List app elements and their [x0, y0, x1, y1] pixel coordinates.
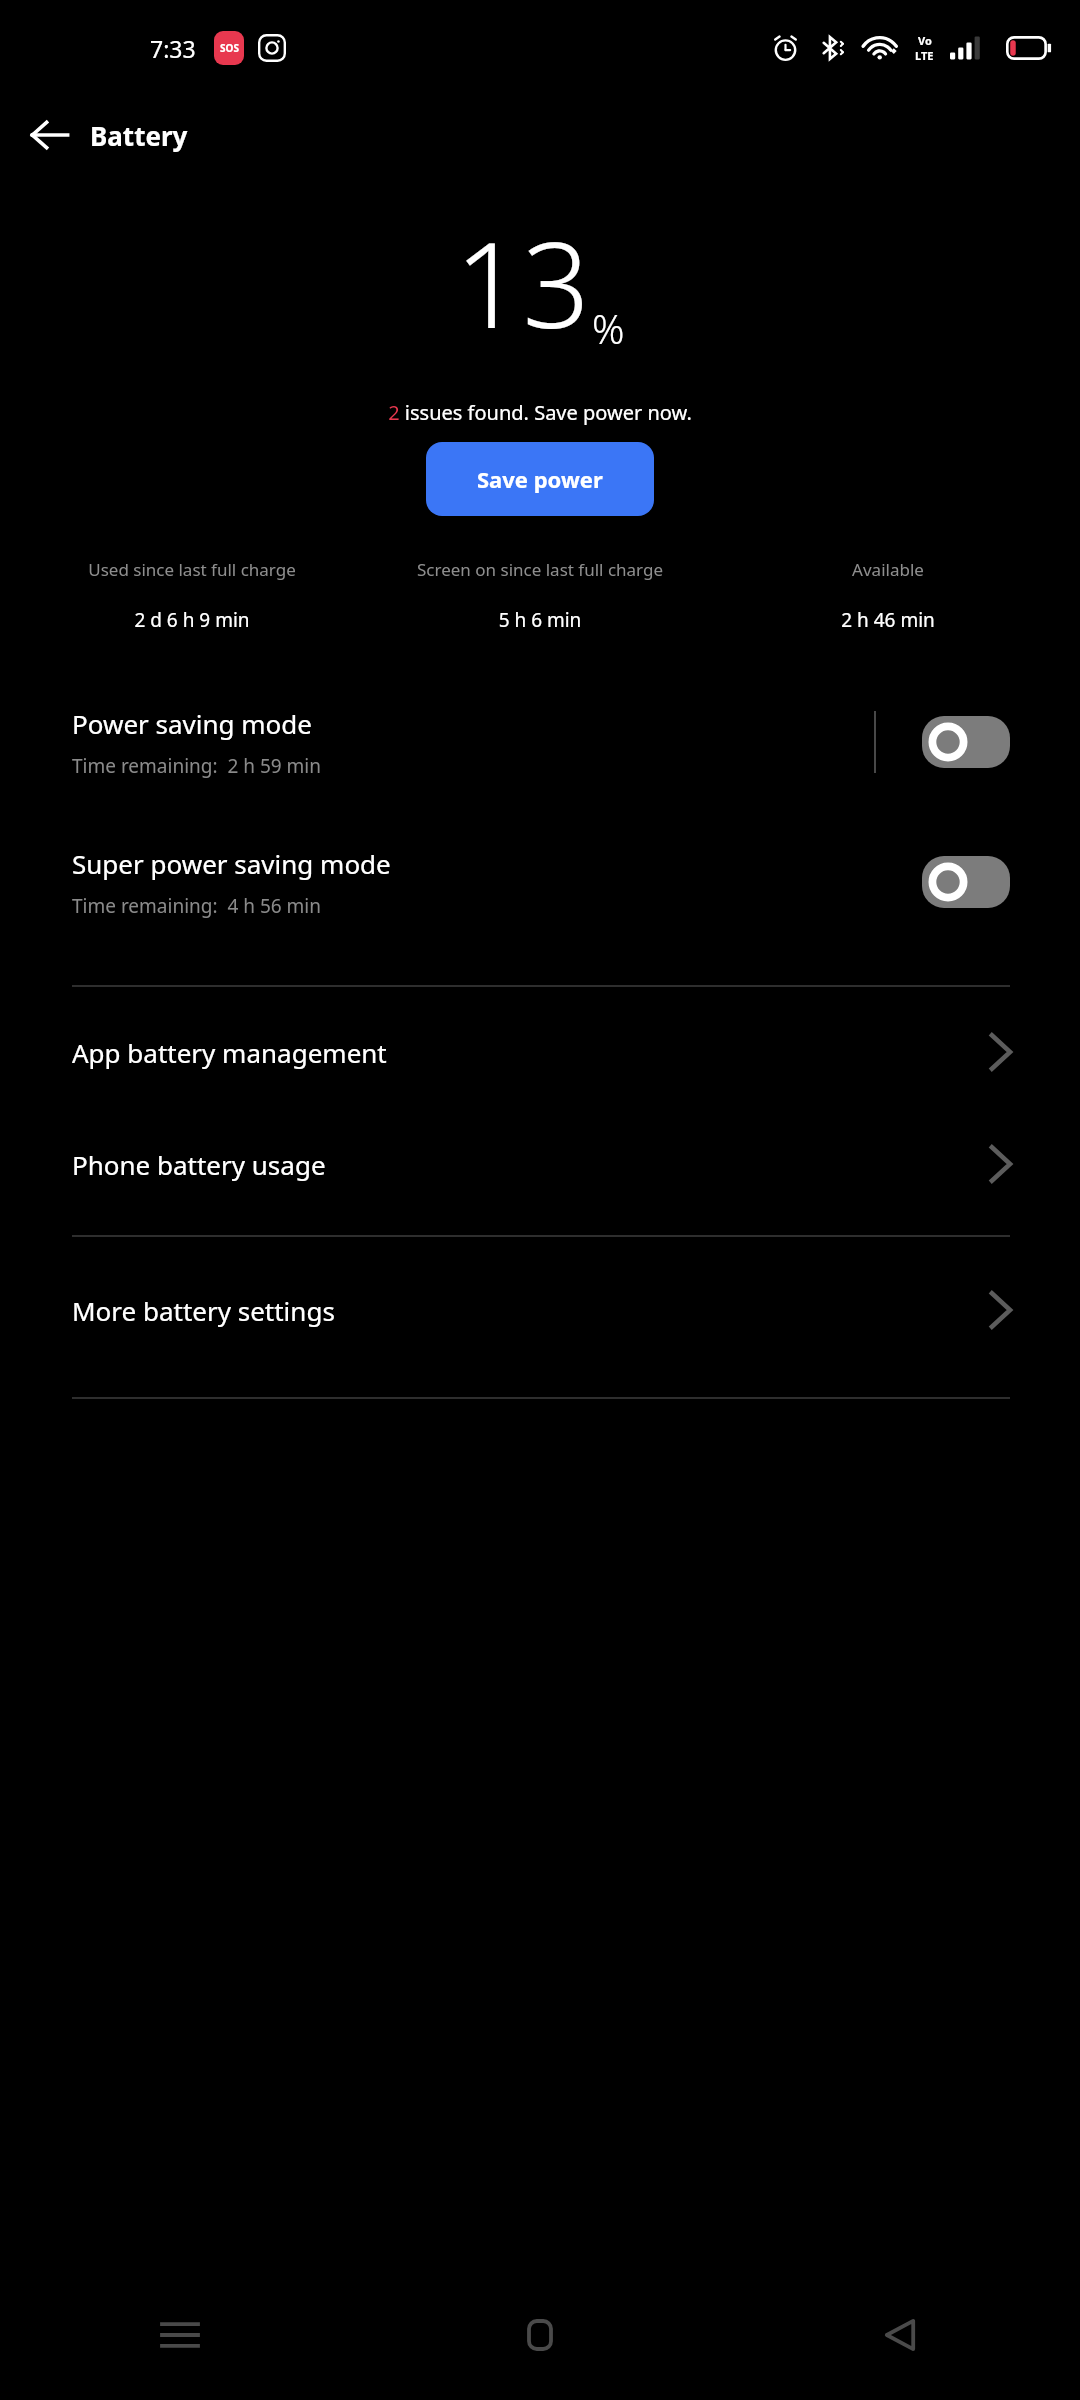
staticText: 2 d 6 h 9 min	[18, 607, 366, 633]
staticText: More battery settings	[72, 1293, 988, 1328]
staticText: Battery	[90, 118, 188, 153]
staticText: Save power	[477, 464, 603, 494]
staticText: Time remaining: 2 h 59 min	[72, 753, 322, 779]
button[interactable]: Back	[720, 2270, 1080, 2400]
staticText: Time remaining: 4 h 56 min	[72, 893, 322, 919]
staticText: 13	[455, 202, 590, 363]
staticText: 2 h 46 min	[714, 607, 1062, 633]
staticText: 7:33	[150, 33, 196, 64]
staticText: SOS	[220, 41, 239, 55]
staticText: Power saving mode	[72, 706, 313, 741]
staticText: %	[592, 301, 625, 355]
staticText: App battery management	[72, 1035, 988, 1070]
button[interactable]: Super power saving mode	[922, 856, 1010, 908]
staticText: Super power saving mode	[72, 846, 391, 881]
staticText: Screen on since last full charge	[376, 558, 704, 581]
staticText: Vo	[918, 33, 932, 48]
staticText: Phone battery usage	[72, 1147, 988, 1182]
staticText: 2 issues found. Save power now.	[388, 399, 692, 426]
button[interactable]: Phone battery usage	[0, 1121, 1080, 1207]
button[interactable]: Save power	[426, 442, 654, 516]
staticText: Used since last full charge	[28, 558, 356, 581]
button[interactable]: Power saving mode	[922, 716, 1010, 768]
button[interactable]: Home	[360, 2270, 720, 2400]
button[interactable]: Super power saving mode	[0, 827, 1080, 937]
staticText: 5 h 6 min	[366, 607, 714, 633]
button[interactable]: Power saving mode	[0, 687, 1080, 797]
staticText: Available	[724, 558, 1052, 581]
button[interactable]: Recents	[0, 2270, 360, 2400]
button[interactable]: Back	[22, 107, 78, 163]
button[interactable]: App battery management	[0, 1009, 1080, 1095]
staticText: LTE	[915, 48, 934, 63]
button[interactable]: More battery settings	[0, 1267, 1080, 1353]
